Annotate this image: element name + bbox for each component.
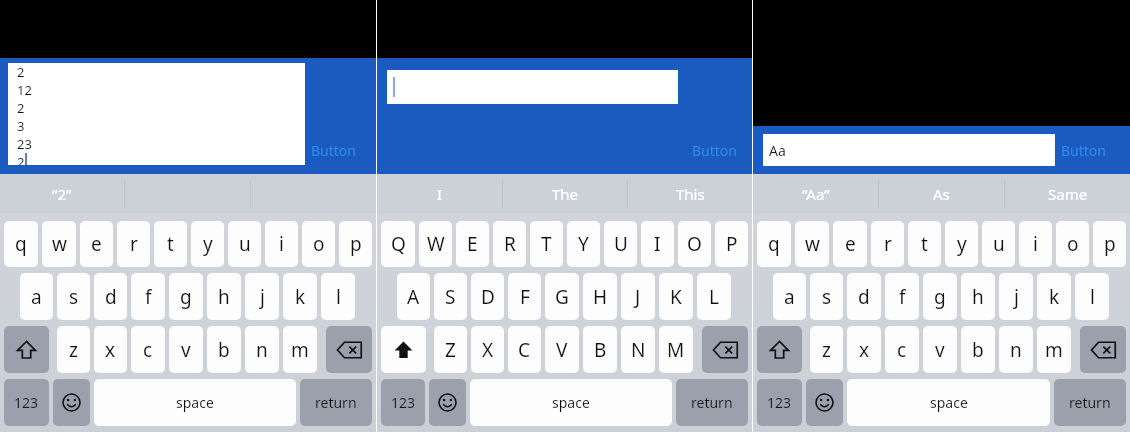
button[interactable]: I <box>377 174 502 213</box>
button[interactable]: s <box>810 273 843 320</box>
button[interactable]: g <box>923 273 957 320</box>
button[interactable]: space <box>94 379 296 426</box>
button[interactable]: Backspace <box>326 326 372 373</box>
button[interactable]: b <box>961 326 995 373</box>
button[interactable]: g <box>169 273 203 320</box>
button[interactable]: a <box>773 273 806 320</box>
button[interactable]: Z <box>434 326 467 373</box>
button[interactable]: C <box>508 326 541 373</box>
button[interactable]: e <box>833 221 867 267</box>
button[interactable]: b <box>207 326 241 373</box>
button[interactable]: return <box>1054 379 1126 426</box>
button[interactable]: T <box>530 221 563 267</box>
button[interactable]: q <box>757 221 791 267</box>
button[interactable]: 123 <box>757 379 802 426</box>
button[interactable]: p <box>1093 221 1126 267</box>
button[interactable]: v <box>169 326 203 373</box>
button[interactable]: n <box>245 326 279 373</box>
button[interactable]: m <box>283 326 317 373</box>
button[interactable]: o <box>302 221 335 267</box>
button[interactable]: F <box>508 273 541 320</box>
button[interactable]: W <box>419 221 452 267</box>
button[interactable]: G <box>545 273 579 320</box>
button[interactable]: Aa <box>763 134 1055 166</box>
button[interactable]: m <box>1037 326 1071 373</box>
button[interactable]: The <box>503 174 627 213</box>
button[interactable]: h <box>961 273 995 320</box>
button[interactable]: 2 <box>8 63 305 165</box>
button[interactable]: d <box>847 273 881 320</box>
button[interactable]: Emoji keyboard <box>53 379 90 426</box>
button[interactable]: return <box>676 379 748 426</box>
button[interactable]: y <box>191 221 224 267</box>
button[interactable]: a <box>20 273 53 320</box>
button[interactable]: w <box>795 221 829 267</box>
button[interactable]: l <box>1075 273 1109 320</box>
button[interactable]: x <box>847 326 881 373</box>
button[interactable]: 123 <box>381 379 425 426</box>
button[interactable]: space <box>847 379 1050 426</box>
button[interactable]: Button <box>309 139 358 162</box>
button[interactable]: k <box>283 273 317 320</box>
button[interactable]: U <box>604 221 637 267</box>
button[interactable]: Shift <box>4 326 49 373</box>
button[interactable]: j <box>999 273 1033 320</box>
button[interactable]: D <box>471 273 504 320</box>
button[interactable]: o <box>1056 221 1089 267</box>
button[interactable] <box>387 70 678 104</box>
button[interactable]: w <box>42 221 76 267</box>
button[interactable]: V <box>545 326 579 373</box>
button[interactable]: Shift <box>757 326 802 373</box>
button[interactable]: 123 <box>4 379 49 426</box>
button[interactable]: q <box>4 221 38 267</box>
button[interactable]: n <box>999 326 1033 373</box>
button[interactable]: f <box>885 273 919 320</box>
button[interactable]: A <box>397 273 430 320</box>
button[interactable]: “2” <box>0 174 124 213</box>
button[interactable]: e <box>80 221 113 267</box>
button[interactable]: This <box>628 174 752 213</box>
button[interactable]: O <box>678 221 711 267</box>
button[interactable]: E <box>456 221 489 267</box>
button[interactable]: r <box>871 221 904 267</box>
button[interactable]: P <box>715 221 748 267</box>
button[interactable]: y <box>945 221 978 267</box>
button[interactable]: z <box>810 326 843 373</box>
button[interactable]: N <box>621 326 655 373</box>
button[interactable]: j <box>245 273 279 320</box>
button[interactable]: K <box>659 273 693 320</box>
button[interactable]: return <box>300 379 372 426</box>
button[interactable]: r <box>117 221 150 267</box>
button[interactable]: B <box>583 326 617 373</box>
button[interactable]: v <box>923 326 957 373</box>
button[interactable]: x <box>94 326 127 373</box>
button[interactable]: M <box>659 326 693 373</box>
button[interactable]: l <box>321 273 355 320</box>
button[interactable]: H <box>583 273 617 320</box>
button[interactable]: “Aa” <box>753 174 878 213</box>
button[interactable]: Backspace <box>1080 326 1126 373</box>
button[interactable]: Shift <box>381 326 426 373</box>
button[interactable]: p <box>339 221 372 267</box>
button[interactable]: Y <box>567 221 600 267</box>
button[interactable]: As <box>879 174 1004 213</box>
button[interactable]: L <box>697 273 731 320</box>
button[interactable]: f <box>131 273 165 320</box>
button[interactable]: s <box>57 273 90 320</box>
button[interactable]: space <box>470 379 672 426</box>
button[interactable]: u <box>228 221 261 267</box>
button[interactable]: Emoji keyboard <box>806 379 843 426</box>
button[interactable]: Backspace <box>702 326 748 373</box>
button[interactable]: h <box>207 273 241 320</box>
button[interactable]: d <box>94 273 127 320</box>
button[interactable]: Button <box>1059 139 1108 162</box>
button[interactable]: R <box>493 221 526 267</box>
button[interactable]: c <box>131 326 165 373</box>
button[interactable]: S <box>434 273 467 320</box>
button[interactable]: X <box>471 326 504 373</box>
button[interactable]: J <box>621 273 655 320</box>
button[interactable]: t <box>154 221 187 267</box>
button[interactable]: t <box>908 221 941 267</box>
